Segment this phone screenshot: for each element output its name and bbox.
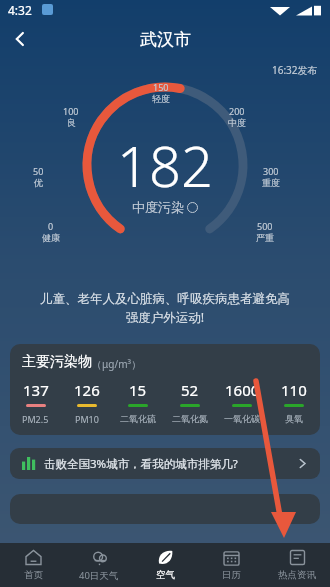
staticText: 首页 (24, 569, 43, 581)
button[interactable]: 40日天气 (66, 543, 132, 587)
staticText: （μg/m³） (92, 357, 141, 371)
button[interactable]: 主要污染物 (10, 344, 320, 435)
staticText: 良 (67, 117, 76, 128)
staticText: 严重 (256, 232, 274, 243)
button[interactable] (10, 494, 320, 524)
staticText: 武汉市 (140, 29, 191, 50)
staticText: 一氧化碳 (224, 413, 260, 424)
button[interactable]: 热点资讯 (264, 543, 330, 587)
button[interactable]: 空气 (132, 543, 198, 587)
button[interactable]: 击败全国3%城市，看我的城市排第几? (10, 448, 320, 479)
staticText: 重度 (262, 177, 280, 188)
staticText: 16:32发布 (272, 63, 318, 77)
staticText: PM10 (75, 413, 99, 425)
staticText: 1600 (225, 380, 260, 400)
staticText: 空气 (156, 569, 175, 581)
staticText: 40日天气 (79, 569, 119, 582)
staticText: 二氧化氮 (172, 413, 208, 424)
staticText: 击败全国3%城市，看我的城市排第几? (44, 456, 238, 472)
button[interactable]: 日历 (198, 543, 264, 587)
staticText: 二氧化硫 (120, 413, 156, 424)
staticText: 500 (257, 220, 273, 232)
button[interactable]: 首页 (0, 543, 66, 587)
staticText: 优 (34, 177, 43, 188)
staticText: 182 (117, 127, 213, 203)
staticText: 200 (229, 105, 245, 117)
staticText: 52 (181, 380, 199, 400)
staticText: 儿童、老年人及心脏病、呼吸疾病患者避免高 强度户外运动! (18, 291, 312, 326)
staticText: PM2.5 (22, 413, 49, 425)
staticText: 50 (33, 165, 44, 177)
staticText: 300 (263, 165, 279, 177)
staticText: 126 (74, 380, 100, 400)
staticText: 中度 (228, 117, 246, 128)
staticText: 100 (63, 105, 79, 117)
button[interactable]: Back (0, 19, 40, 59)
staticText: 臭氧 (285, 413, 303, 424)
staticText: 110 (281, 380, 307, 400)
staticText: 15 (129, 380, 147, 400)
staticText: 0 (48, 220, 54, 232)
staticText: 主要污染物 (22, 353, 92, 371)
staticText: 健康 (42, 232, 60, 243)
staticText: 热点资讯 (278, 569, 316, 581)
staticText: 4:32 (8, 2, 32, 18)
staticText: 中度污染 (132, 199, 184, 215)
staticText: 轻度 (152, 93, 170, 104)
staticText: 150 (153, 81, 169, 93)
staticText: 日历 (222, 569, 241, 581)
staticText: 137 (23, 380, 49, 400)
